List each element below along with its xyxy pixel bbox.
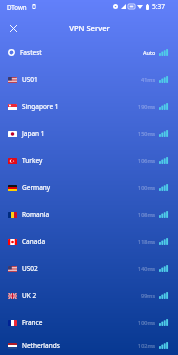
staticText: Japan 1 [22,129,45,138]
staticText: 102ms [138,342,156,349]
button[interactable]: Japan 1 [0,120,178,147]
button[interactable]: Germany [0,174,178,201]
button[interactable]: US02 [0,255,178,282]
button[interactable]: Fastest [0,39,178,66]
staticText: 108ms [138,211,156,218]
button[interactable]: Singapore 1 [0,93,178,120]
staticText: 140ms [138,265,156,272]
staticText: 41ms [141,76,156,83]
button[interactable]: Romania [0,201,178,228]
staticText: Fastest [20,48,42,57]
staticText: 150ms [138,130,156,137]
staticText: 99ms [141,292,156,299]
staticText: Germany [22,183,51,192]
staticText: 190ms [138,103,156,110]
button[interactable]: UK 2 [0,282,178,309]
button[interactable]: Turkey [0,147,178,174]
staticText: 106ms [138,157,156,164]
staticText: Auto [143,49,156,56]
staticText: Netherlands [22,341,60,350]
staticText: US02 [22,264,38,273]
staticText: Singapore 1 [22,102,59,111]
button[interactable]: France [0,309,178,336]
staticText: Canada [22,237,46,246]
button[interactable]: Canada [0,228,178,255]
button[interactable]: Close [4,19,22,37]
staticText: US01 [22,75,38,84]
staticText: 118ms [138,238,156,245]
staticText: Turkey [22,156,43,165]
button[interactable]: Netherlands [0,336,178,355]
staticText: 5:37 [152,2,166,11]
staticText: Romania [22,210,50,219]
button[interactable]: US01 [0,66,178,93]
staticText: 100ms [138,319,156,326]
staticText: 100ms [138,184,156,191]
staticText: VPN Server [69,23,110,33]
staticText: France [22,318,43,327]
staticText: DTown [7,3,27,11]
staticText: UK 2 [22,291,37,300]
